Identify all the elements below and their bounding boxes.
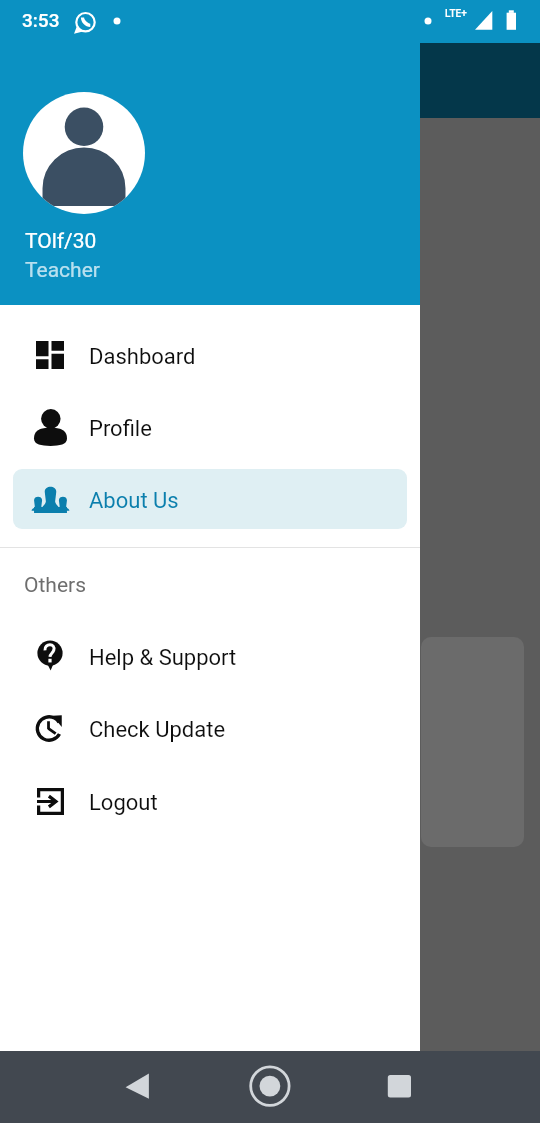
staticText: Profile (89, 416, 152, 442)
button[interactable]: Back (108, 1051, 168, 1123)
button[interactable]: Logout (13, 771, 407, 831)
button[interactable]: Recent apps (369, 1051, 429, 1123)
button[interactable]: Home (240, 1051, 300, 1123)
staticText: Logout (89, 790, 158, 816)
button[interactable]: About Us (13, 469, 407, 529)
button[interactable]: Help and Support (13, 626, 407, 686)
staticText: Others (24, 573, 86, 598)
staticText: Help & Support (89, 645, 237, 671)
staticText: 3:53 (22, 9, 60, 31)
staticText: Check Update (89, 717, 226, 743)
button[interactable]: Profile (13, 397, 407, 457)
staticText: TOlf/30 (25, 229, 97, 254)
button[interactable]: Dashboard (13, 325, 407, 385)
staticText: LTE+ (445, 8, 467, 20)
staticText: Teacher (25, 258, 100, 283)
button[interactable]: Check Update (13, 698, 407, 758)
staticText: About Us (89, 488, 179, 514)
staticText: Dashboard (89, 344, 196, 370)
